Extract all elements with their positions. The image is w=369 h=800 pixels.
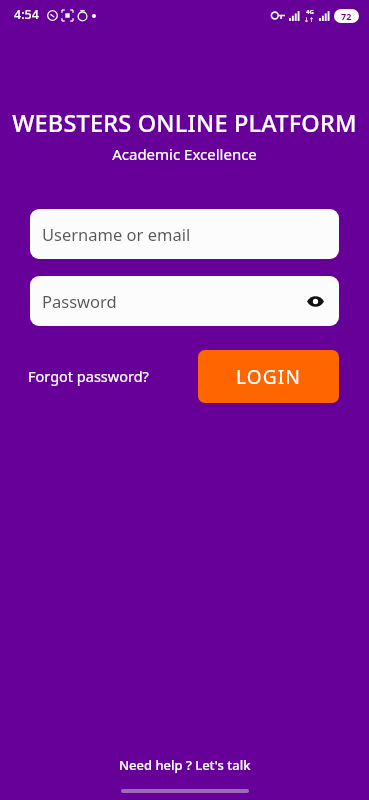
staticText: Username or email	[42, 223, 191, 245]
staticText: 4:54	[14, 6, 39, 23]
button[interactable]: LOGIN	[198, 350, 339, 403]
staticText: Academic Excellence	[0, 144, 369, 164]
button[interactable]: Forgot password?	[22, 362, 155, 390]
button[interactable]: Username or email	[30, 209, 339, 259]
staticText: Forgot password?	[28, 366, 149, 386]
staticText: Password	[42, 290, 117, 312]
button[interactable]: Show password	[301, 287, 329, 315]
staticText: ↓↑	[304, 16, 315, 23]
button[interactable]: Need help ? Let's talk	[111, 752, 259, 778]
staticText: 72	[341, 10, 352, 22]
staticText: LOGIN	[236, 364, 302, 390]
staticText: Need help ? Let's talk	[119, 756, 251, 774]
button[interactable]: Password	[30, 276, 339, 326]
staticText: WEBSTERS ONLINE PLATFORM	[0, 107, 369, 139]
staticText: 4G	[306, 8, 314, 16]
